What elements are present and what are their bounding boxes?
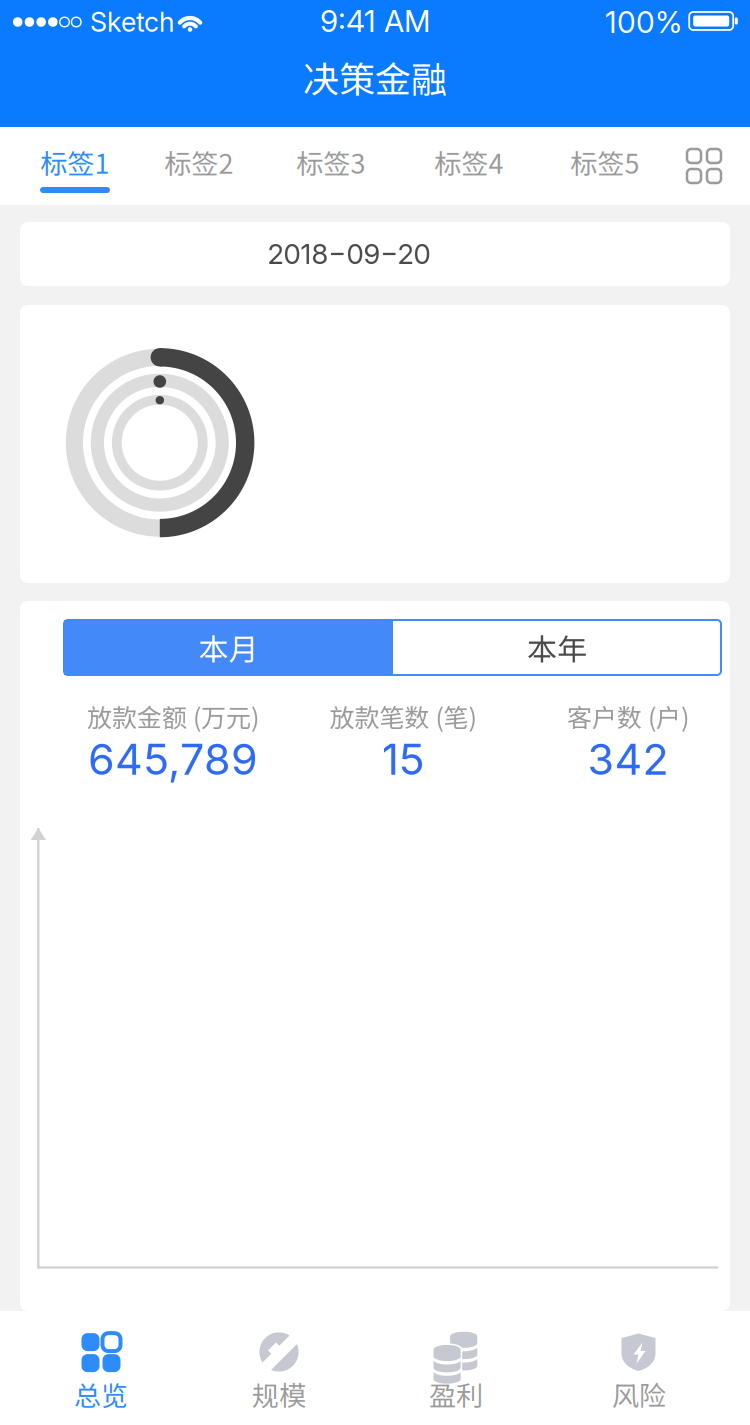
button[interactable]: 风险 [554,1311,724,1425]
staticText: 总览 [74,1374,128,1414]
staticText: 盈利 [429,1374,483,1414]
button[interactable]: 规模 [194,1311,364,1425]
staticText: 放款笔数 (笔) [329,698,476,734]
staticText: 本年 [527,626,587,669]
staticText: 100% [605,4,682,40]
button[interactable]: 标签2 [139,127,259,205]
staticText: 决策金融 [303,51,447,103]
button[interactable]: All tabs [672,127,736,205]
staticText: 15 [381,733,424,785]
staticText: 风险 [612,1374,666,1414]
staticText: 9:41 AM [320,3,430,39]
staticText: 标签5 [570,142,639,182]
staticText: 标签3 [296,142,365,182]
button[interactable]: 标签3 [271,127,391,205]
staticText: 放款金额 (万元) [87,698,259,734]
staticText: Sketch [90,6,175,38]
button[interactable]: 标签5 [545,127,665,205]
button[interactable]: 标签1 [15,127,135,205]
staticText: 本月 [198,626,258,669]
button[interactable]: 标签4 [409,127,529,205]
button[interactable]: 本年 [393,620,721,675]
staticText: 342 [587,733,668,785]
staticText: 标签1 [40,142,109,182]
button[interactable]: 总览 [16,1311,186,1425]
staticText: 规模 [252,1374,306,1414]
staticText: 标签2 [164,142,233,182]
staticText: 645,789 [88,733,258,785]
button[interactable]: 本月 [64,620,393,675]
staticText: 客户数 (户) [567,698,689,734]
button[interactable]: 盈利 [371,1311,541,1425]
staticText: 标签4 [434,142,503,182]
staticText: 2018−09−20 [267,237,430,271]
